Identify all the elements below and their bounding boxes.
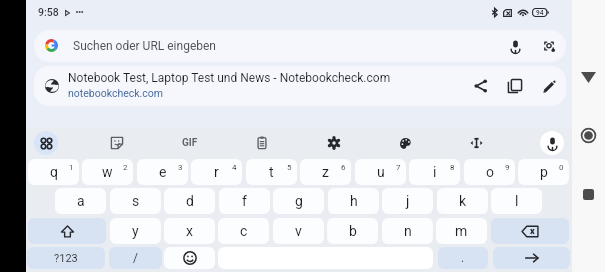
button[interactable]: Share [468, 73, 494, 99]
staticText: a [77, 193, 85, 209]
button[interactable]: Notebook Test, Laptop Test und News - No… [34, 66, 566, 106]
button[interactable]: Home [572, 120, 605, 150]
button[interactable]: k [437, 188, 488, 214]
button[interactable]: Emoji [164, 247, 215, 269]
button[interactable]: Shift [28, 218, 106, 244]
staticText: c [240, 223, 248, 239]
button[interactable]: o [464, 159, 515, 185]
button[interactable]: n [382, 218, 433, 244]
staticText: GIF [182, 137, 198, 149]
button[interactable]: Back [572, 62, 605, 92]
staticText: n [404, 223, 412, 239]
button[interactable]: Recent apps [572, 179, 605, 209]
button[interactable]: Stickers [93, 128, 141, 158]
button[interactable]: Voice search [501, 32, 529, 60]
staticText: 94 [536, 9, 544, 17]
button[interactable]: m [436, 218, 487, 244]
staticText: notebookcheck.com [68, 87, 164, 99]
staticText: 0 [559, 163, 564, 172]
button[interactable]: p [518, 159, 569, 185]
staticText: l [515, 193, 519, 209]
staticText: q [50, 164, 58, 180]
button[interactable]: c [218, 218, 269, 244]
staticText: m [455, 223, 468, 239]
button[interactable]: Copy link [502, 73, 528, 99]
button[interactable]: Edit [536, 73, 562, 99]
button[interactable]: Themes [381, 128, 429, 158]
button[interactable]: y [110, 218, 161, 244]
staticText: ?123 [54, 252, 78, 265]
staticText: 6 [341, 163, 346, 172]
staticText: w [102, 164, 113, 180]
button[interactable]: ?123 [27, 247, 105, 269]
button[interactable]: Text editing [452, 128, 500, 158]
staticText: e [159, 164, 167, 180]
staticText: Notebook Test, Laptop Test und News - No… [68, 71, 438, 85]
button[interactable]: h [328, 188, 379, 214]
staticText: 7 [396, 163, 401, 172]
button[interactable]: w [82, 159, 133, 185]
staticText: 9:58 [38, 6, 59, 18]
button[interactable]: Keyboard apps [22, 128, 70, 158]
staticText: o [486, 164, 494, 180]
button[interactable]: / [109, 247, 162, 269]
staticText: g [295, 193, 303, 209]
button[interactable]: . [438, 247, 488, 269]
button[interactable]: u [355, 159, 406, 185]
button[interactable]: v [273, 218, 324, 244]
button[interactable]: i [409, 159, 460, 185]
button[interactable]: x [164, 218, 215, 244]
staticText: y [132, 223, 139, 239]
staticText: i [433, 164, 437, 180]
button[interactable]: Search with Google Lens [535, 32, 563, 60]
button[interactable]: a [55, 188, 106, 214]
staticText: . [461, 251, 465, 265]
button[interactable]: d [164, 188, 215, 214]
button[interactable]: g [273, 188, 324, 214]
staticText: k [459, 193, 467, 209]
button[interactable]: Enter [493, 247, 570, 269]
staticText: d [186, 193, 194, 209]
button[interactable]: l [491, 188, 542, 214]
button[interactable]: Settings [310, 128, 358, 158]
button[interactable]: j [382, 188, 433, 214]
staticText: 5 [287, 163, 292, 172]
staticText: x [186, 223, 193, 239]
staticText: h [350, 193, 358, 209]
button[interactable]: GIF [166, 128, 214, 158]
button[interactable]: e [137, 159, 188, 185]
button[interactable]: q [28, 159, 79, 185]
staticText: u [377, 164, 385, 180]
staticText: j [406, 193, 410, 209]
staticText: z [322, 164, 329, 180]
staticText: s [132, 193, 140, 209]
staticText: Suchen oder URL eingeben [73, 39, 216, 53]
button[interactable]: Backspace [491, 218, 569, 244]
button[interactable]: Suchen oder URL eingeben [34, 30, 566, 62]
staticText: / [133, 251, 138, 265]
staticText: b [349, 223, 357, 239]
button[interactable]: z [300, 159, 351, 185]
button[interactable]: r [191, 159, 242, 185]
staticText: 4 [232, 163, 237, 172]
staticText: v [295, 223, 302, 239]
staticText: 1 [69, 163, 74, 172]
staticText: r [214, 164, 219, 180]
staticText: f [242, 193, 247, 209]
button[interactable]: s [110, 188, 161, 214]
staticText: 2 [123, 163, 128, 172]
button[interactable]: f [219, 188, 270, 214]
staticText: 3 [178, 163, 183, 172]
staticText: 8 [450, 163, 455, 172]
staticText: t [269, 164, 274, 180]
button[interactable]: t [246, 159, 297, 185]
button[interactable]: Voice input [528, 128, 576, 158]
button[interactable]: b [327, 218, 378, 244]
button[interactable]: Clipboard [238, 128, 286, 158]
staticText: 9 [505, 163, 510, 172]
staticText: p [540, 164, 548, 180]
